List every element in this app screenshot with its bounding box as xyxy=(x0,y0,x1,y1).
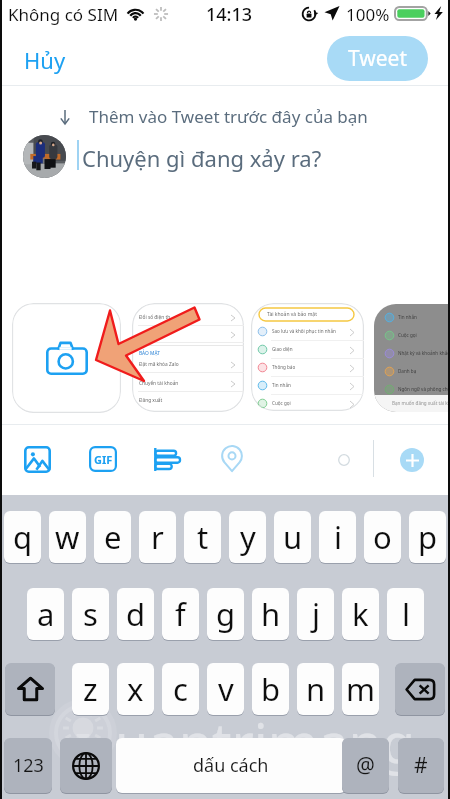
staticText: a xyxy=(37,593,55,635)
button[interactable]: m xyxy=(342,663,379,715)
button[interactable]: p xyxy=(409,511,446,563)
staticText: Không có SIM xyxy=(8,3,119,26)
staticText: Ngôn ngữ và phông chữ xyxy=(398,386,450,392)
staticText: Thêm vào Tweet trước đây của bạn xyxy=(89,105,368,128)
staticText: Thông báo xyxy=(272,364,296,370)
button[interactable]: Hủy xyxy=(14,36,76,84)
staticText: n xyxy=(306,668,326,710)
button[interactable]: e xyxy=(94,511,131,563)
staticText: 14:13 xyxy=(206,2,253,27)
staticText: Chuyện gì đang xảy ra? xyxy=(82,143,322,173)
staticText: g xyxy=(216,593,236,635)
button[interactable]: Tài khoản và bảo mật xyxy=(251,303,364,411)
button[interactable]: t xyxy=(184,511,221,563)
button[interactable]: x xyxy=(117,663,154,715)
staticText: Chuyển tài khoản xyxy=(139,380,179,387)
button[interactable]: a xyxy=(27,588,64,640)
staticText: t xyxy=(197,516,209,558)
button[interactable]: s xyxy=(72,588,109,640)
staticText: j xyxy=(312,593,320,635)
staticText: Đăng xuất xyxy=(139,397,163,404)
button[interactable]: o xyxy=(364,511,401,563)
staticText: Hủy xyxy=(24,45,66,75)
staticText: Cuộc gọi xyxy=(398,332,417,338)
button[interactable]: Add location xyxy=(221,446,243,472)
button[interactable]: Shift xyxy=(5,663,55,715)
button[interactable]: u xyxy=(274,511,311,563)
button[interactable]: Add another tweet xyxy=(400,448,424,472)
button[interactable]: Add GIF xyxy=(89,446,117,472)
staticText: d xyxy=(126,593,146,635)
button[interactable]: Backspace xyxy=(395,663,445,715)
button[interactable]: v xyxy=(207,663,244,715)
staticText: i xyxy=(334,516,342,558)
button[interactable]: Add photo xyxy=(24,446,51,473)
button[interactable]: # xyxy=(398,738,444,793)
staticText: z xyxy=(83,668,98,710)
staticText: m xyxy=(346,668,375,710)
staticText: dấu cách xyxy=(193,753,269,778)
staticText: y xyxy=(240,516,256,558)
staticText: GIF xyxy=(94,452,113,467)
button[interactable]: k xyxy=(342,588,379,640)
button[interactable]: dấu cách xyxy=(116,738,346,793)
staticText: Giao diện xyxy=(272,346,293,352)
staticText: f xyxy=(175,593,186,635)
button[interactable]: f xyxy=(162,588,199,640)
staticText: u xyxy=(283,516,303,558)
staticText: @ xyxy=(356,751,375,780)
staticText: Tin nhắn xyxy=(272,382,291,388)
staticText: uantrimang xyxy=(115,705,416,779)
button[interactable]: b xyxy=(252,663,289,715)
button[interactable]: d xyxy=(117,588,154,640)
staticText: Danh bạ xyxy=(398,368,417,374)
button[interactable]: n xyxy=(297,663,334,715)
staticText: Tin nhắn xyxy=(398,314,417,320)
button[interactable]: @ xyxy=(342,738,389,793)
staticText: o xyxy=(373,516,392,558)
button[interactable]: i xyxy=(319,511,356,563)
staticText: h xyxy=(261,593,281,635)
staticText: e xyxy=(104,516,122,558)
staticText: Đặt mã khóa Zalo xyxy=(139,361,179,368)
staticText: 100% xyxy=(346,3,390,26)
staticText: x xyxy=(127,668,144,710)
button[interactable]: Character count xyxy=(338,454,350,466)
button[interactable]: h xyxy=(252,588,289,640)
staticText: c xyxy=(173,668,188,710)
staticText: Tweet xyxy=(348,44,408,73)
staticText: Tài khoản và bảo mật xyxy=(267,311,317,318)
staticText: p xyxy=(418,516,438,558)
staticText: Đổi số điện th xyxy=(139,314,171,321)
staticText: BẢO MẬT xyxy=(139,350,160,357)
button[interactable]: Change keyboard xyxy=(60,738,112,793)
button[interactable]: g xyxy=(207,588,244,640)
button[interactable]: c xyxy=(162,663,199,715)
staticText: r xyxy=(151,516,164,558)
button[interactable]: q xyxy=(4,511,41,563)
staticText: k xyxy=(352,593,369,635)
staticText: Nhật ký và khoảnh khắc xyxy=(398,350,450,356)
button[interactable]: Đổi số điện th xyxy=(132,303,244,412)
button[interactable]: z xyxy=(72,663,109,715)
button[interactable]: y xyxy=(229,511,266,563)
staticText: w xyxy=(55,516,80,558)
button[interactable]: Add poll xyxy=(154,448,180,471)
staticText: v xyxy=(218,668,234,710)
button[interactable]: Camera xyxy=(12,303,121,413)
staticText: # xyxy=(414,751,428,780)
staticText: l xyxy=(402,593,410,635)
staticText: b xyxy=(261,668,281,710)
button[interactable]: Thêm vào Tweet trước đây của bạn xyxy=(60,105,368,128)
button[interactable]: 123 xyxy=(4,738,52,793)
button[interactable]: w xyxy=(49,511,86,563)
button[interactable]: Tin nhắn xyxy=(374,304,450,412)
staticText: Bạn muốn đăng xuất tài kho xyxy=(392,400,450,406)
button[interactable]: r xyxy=(139,511,176,563)
staticText: 123 xyxy=(13,753,44,778)
button[interactable]: Tweet xyxy=(327,36,428,81)
staticText: Cuộc gọi xyxy=(272,400,291,406)
button[interactable]: j xyxy=(297,588,334,640)
staticText: s xyxy=(83,593,98,635)
button[interactable]: l xyxy=(387,588,424,640)
